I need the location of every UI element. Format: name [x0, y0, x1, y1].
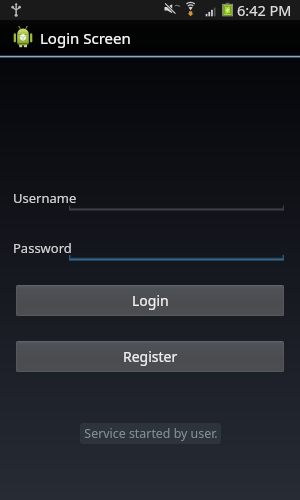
button[interactable]: Login — [16, 285, 284, 316]
button[interactable]: Register — [16, 341, 284, 372]
staticText: Login Screen — [40, 28, 131, 48]
button[interactable]: Username — [69, 189, 284, 211]
staticText: Login — [132, 291, 169, 310]
staticText: Service started by user. — [84, 425, 218, 442]
button[interactable]: Password — [69, 239, 284, 261]
staticText: Username — [13, 189, 77, 207]
staticText: 6:42 PM — [237, 0, 292, 20]
staticText: Register — [123, 347, 178, 366]
staticText: Password — [13, 239, 72, 257]
